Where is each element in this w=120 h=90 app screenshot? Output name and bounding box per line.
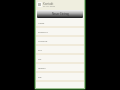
other: Contact	[37, 2, 42, 7]
staticText: Telefon	[38, 67, 46, 70]
button[interactable]: Fax	[36, 73, 84, 82]
staticText: 01.01.2024	[43, 4, 56, 7]
staticText: Fax	[38, 76, 42, 79]
staticText: Anschrift	[38, 40, 48, 43]
staticText: Name	[38, 22, 45, 25]
staticText: Kontakt	[43, 2, 54, 6]
staticText: PLZ	[38, 49, 42, 52]
staticText: Neuer Eintrag	[52, 12, 69, 16]
staticText: Kunde-Nr	[38, 31, 48, 34]
button[interactable]: PLZ	[36, 46, 84, 55]
button[interactable]: Name	[36, 19, 84, 28]
button[interactable]: Neuer Eintrag	[37, 10, 83, 18]
button[interactable]: Kunde-Nr	[36, 28, 84, 37]
staticText: Ort	[38, 58, 42, 61]
button[interactable]: Anschrift	[36, 37, 84, 46]
button[interactable]: Telefon	[36, 64, 84, 73]
button[interactable]: Ort	[36, 55, 84, 64]
